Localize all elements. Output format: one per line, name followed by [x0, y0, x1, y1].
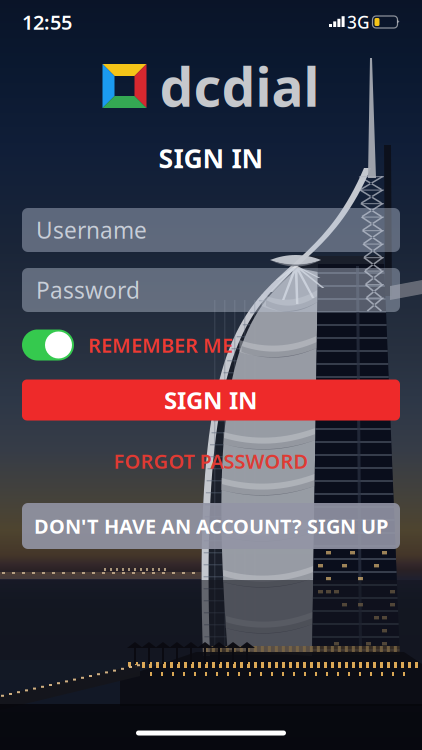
- button[interactable]: DON'T HAVE AN ACCOUNT? SIGN UP: [22, 503, 400, 549]
- staticText: DON'T HAVE AN ACCOUNT? SIGN UP: [34, 513, 388, 539]
- button[interactable]: Username: [22, 208, 400, 252]
- button[interactable]: REMEMBER ME: [22, 329, 400, 361]
- staticText: FORGOT PASSWORD: [113, 448, 308, 474]
- staticText: 3G: [347, 10, 370, 33]
- staticText: SIGN IN: [164, 384, 258, 416]
- button[interactable]: Password: [22, 268, 400, 312]
- button[interactable]: SIGN IN: [22, 379, 400, 420]
- staticText: REMEMBER ME: [88, 332, 233, 358]
- staticText: Username: [36, 215, 147, 245]
- staticText: 12:55: [22, 9, 72, 35]
- staticText: SIGN IN: [158, 140, 263, 176]
- staticText: Password: [36, 275, 140, 305]
- staticText: dcdial: [159, 51, 319, 121]
- button[interactable]: FORGOT PASSWORD: [22, 448, 400, 474]
